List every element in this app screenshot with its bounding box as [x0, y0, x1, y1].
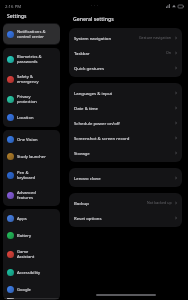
button[interactable]: Date & time: [69, 100, 182, 115]
staticText: Date & time: [74, 105, 174, 111]
button[interactable]: Study launcher: [3, 148, 60, 165]
staticText: Lenovo clone: [74, 175, 174, 181]
staticText: Schedule power on/off: [74, 120, 174, 126]
other: Wi-Fi: [172, 4, 176, 8]
button[interactable]: Accessibility: [3, 264, 60, 281]
button[interactable]: System navigation: [69, 30, 182, 45]
staticText: Screenshot & screen record: [74, 135, 174, 141]
button[interactable]: Apps: [3, 210, 60, 227]
staticText: Accessibility: [17, 270, 41, 276]
button[interactable]: Storage: [69, 145, 182, 160]
staticText: Apps: [17, 216, 27, 222]
staticText: Privacy protection: [17, 94, 37, 104]
staticText: Quick gestures: [74, 65, 174, 71]
button[interactable]: Battery: [3, 227, 60, 244]
staticText: Storage: [74, 150, 174, 156]
button[interactable]: Backup: [69, 195, 182, 210]
button[interactable]: Location: [3, 109, 60, 126]
staticText: Backup: [74, 200, 147, 206]
button[interactable]: Languages & input: [69, 85, 182, 100]
staticText: Notifications & control center: [17, 29, 46, 39]
button[interactable]: Reset options: [69, 210, 182, 225]
staticText: On: [166, 50, 172, 55]
staticText: Pen & keyboard: [17, 170, 35, 180]
staticText: System navigation: [74, 35, 139, 41]
staticText: Advanced features: [17, 190, 36, 200]
staticText: Not backed up: [147, 200, 172, 205]
staticText: Google: [17, 287, 31, 293]
button[interactable]: Biometrics & passwords: [3, 49, 60, 69]
staticText: Game Assistant: [17, 249, 35, 259]
button[interactable]: Lenovo clone: [69, 170, 182, 185]
staticText: Safety & emergency: [17, 74, 39, 84]
button[interactable]: Screenshot & screen record: [69, 130, 182, 145]
staticText: Taskbar: [74, 50, 166, 56]
button[interactable]: Quick gestures: [69, 60, 182, 75]
staticText: Battery: [17, 233, 32, 239]
staticText: One Vision: [17, 137, 38, 143]
button[interactable]: Safety & emergency: [3, 69, 60, 89]
staticText: General settings: [73, 15, 114, 22]
staticText: Languages & input: [74, 90, 174, 96]
staticText: Biometrics & passwords: [17, 54, 42, 64]
button[interactable]: One Vision: [3, 131, 60, 148]
staticText: Study launcher: [17, 154, 46, 160]
button[interactable]: Google: [3, 281, 60, 298]
button[interactable]: Notifications & control center: [3, 24, 60, 44]
button[interactable]: Privacy protection: [3, 89, 60, 109]
staticText: Gesture navigation: [139, 35, 172, 40]
staticText: Reset options: [74, 215, 174, 221]
other: Signal: [166, 4, 170, 8]
other: Battery: [178, 5, 184, 8]
button[interactable]: Pen & keyboard: [3, 165, 60, 185]
button[interactable]: Advanced features: [3, 185, 60, 205]
staticText: 2:16 PM: [5, 3, 22, 9]
button[interactable]: Schedule power on/off: [69, 115, 182, 130]
button[interactable]: Game Assistant: [3, 244, 60, 264]
staticText: Location: [17, 115, 34, 121]
staticText: Settings: [7, 13, 27, 20]
button[interactable]: General settings: [3, 298, 60, 299]
button[interactable]: Taskbar: [69, 45, 182, 60]
